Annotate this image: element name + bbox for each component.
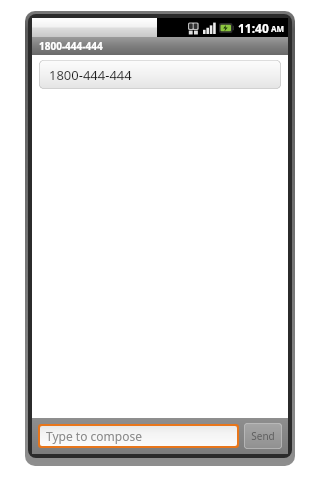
staticText: 1800-444-444 [39,39,103,53]
staticText: AM [271,23,285,34]
staticText: Type to compose [46,428,142,444]
button[interactable]: 1800-444-444 [39,60,281,89]
staticText: Send [251,429,275,443]
button[interactable]: Send [244,423,282,449]
button[interactable]: Type to compose [40,426,237,446]
button[interactable]: 1800-444-444 [32,37,288,55]
staticText: 11:40 [238,20,269,36]
staticText: 1800-444-444 [49,66,132,84]
